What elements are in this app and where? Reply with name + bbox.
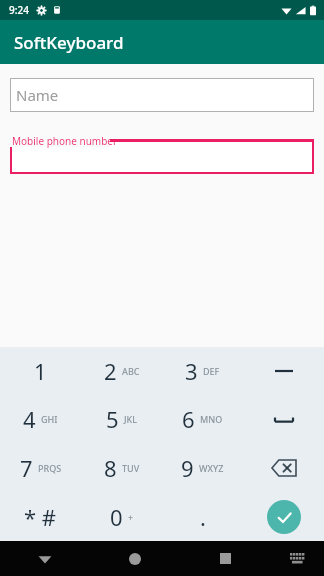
staticText: MNO [200,413,223,425]
staticText: JKL [124,413,138,425]
staticText: 1 [34,356,47,386]
button[interactable]: 7 [0,443,81,492]
button[interactable]: 9 [162,443,243,492]
button[interactable]: Dash [243,347,324,395]
button[interactable]: Home [90,541,180,576]
button[interactable]: . [162,492,243,541]
staticText: 3 [185,356,198,386]
button[interactable]: 6 [162,395,243,443]
staticText: PRQS [38,462,62,474]
button[interactable]: 4 [0,395,81,443]
button[interactable]: Change keyboard [270,541,324,576]
button[interactable]: Enter [243,492,324,541]
button[interactable]: 8 [81,443,162,492]
button[interactable]: Name [10,78,314,112]
staticText: 8 [104,453,117,483]
button[interactable] [10,140,314,174]
staticText: WXYZ [199,462,224,474]
staticText: 7 [20,453,33,483]
staticText: SoftKeyboard [14,31,124,54]
staticText: Name [16,85,59,105]
button[interactable]: 5 [81,395,162,443]
staticText: TUV [122,462,140,474]
staticText: 5 [106,404,119,434]
staticText: * # [24,502,57,532]
staticText: 6 [182,404,195,434]
button[interactable]: Space [243,395,324,443]
button[interactable]: 0 [81,492,162,541]
staticText: 4 [23,404,36,434]
staticText: DEF [203,365,220,377]
staticText: 9 [181,453,194,483]
staticText: ABC [122,365,140,377]
staticText: 2 [104,356,117,386]
staticText: GHI [41,413,58,425]
staticText: 9:24 [9,3,29,17]
button[interactable]: Recent apps [180,541,270,576]
staticText: Mobile phone number [12,134,118,148]
staticText: + [128,511,134,523]
staticText: . [200,502,206,532]
staticText: 0 [110,502,123,532]
button[interactable]: Backspace [243,443,324,492]
button[interactable]: 3 [162,347,243,395]
button[interactable]: 1 [0,347,81,395]
button[interactable]: 2 [81,347,162,395]
button[interactable]: Back [0,541,90,576]
button[interactable]: * # [0,492,81,541]
